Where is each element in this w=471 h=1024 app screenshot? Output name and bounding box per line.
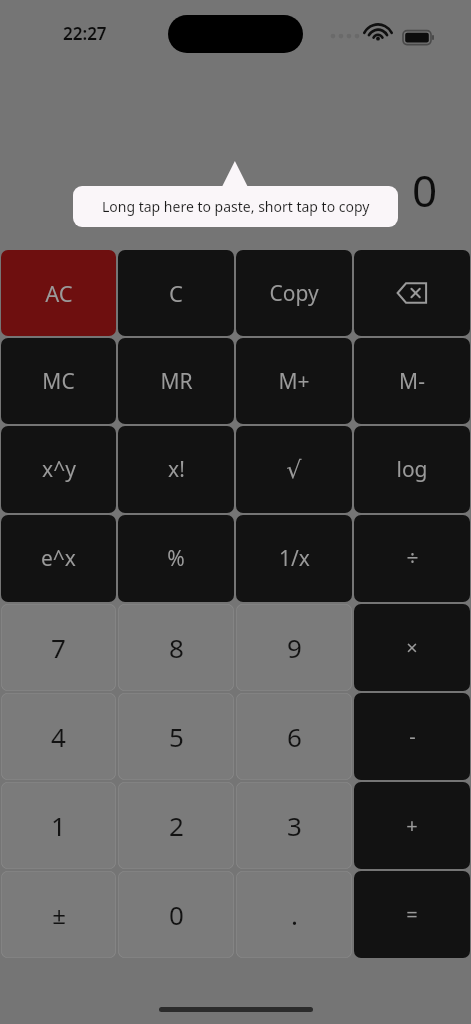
staticText: 2 — [169, 808, 184, 843]
staticText: 22:27 — [63, 22, 107, 45]
button[interactable]: e^x — [1, 515, 116, 602]
button[interactable]: Long tap here to paste, short tap to cop… — [73, 186, 398, 227]
staticText: = — [406, 901, 418, 928]
button[interactable]: 8 — [118, 604, 234, 691]
button[interactable]: 1/x — [236, 515, 352, 602]
staticText: 7 — [51, 630, 66, 665]
button[interactable]: - — [354, 693, 470, 780]
button[interactable]: % — [118, 515, 234, 602]
button[interactable]: 5 — [118, 693, 234, 780]
button[interactable]: ± — [1, 871, 116, 958]
button[interactable]: + — [354, 782, 470, 869]
staticText: ± — [52, 898, 66, 931]
staticText: 4 — [51, 719, 66, 754]
staticText: 0 — [169, 897, 184, 932]
staticText: Long tap here to paste, short tap to cop… — [102, 197, 370, 216]
staticText: MR — [160, 367, 193, 396]
staticText: 3 — [287, 808, 302, 843]
staticText: 1/x — [279, 544, 310, 573]
staticText: 5 — [169, 719, 184, 754]
button[interactable]: 9 — [236, 604, 352, 691]
staticText: - — [409, 723, 416, 750]
button[interactable]: 1 — [1, 782, 116, 869]
button[interactable]: × — [354, 604, 470, 691]
staticText: 8 — [169, 630, 184, 665]
staticText: . — [291, 897, 298, 932]
staticText: Copy — [269, 279, 319, 308]
button[interactable]: log — [354, 426, 470, 513]
button[interactable]: √ — [236, 426, 352, 513]
staticText: 9 — [287, 630, 302, 665]
staticText: 6 — [287, 719, 302, 754]
staticText: % — [167, 544, 185, 573]
button[interactable]: AC — [1, 250, 116, 336]
staticText: M+ — [278, 367, 310, 396]
button[interactable]: C — [118, 250, 234, 336]
button[interactable]: = — [354, 871, 470, 958]
button[interactable]: M- — [354, 338, 470, 424]
button[interactable]: 2 — [118, 782, 234, 869]
button[interactable]: 6 — [236, 693, 352, 780]
button[interactable]: Backspace — [354, 250, 470, 336]
staticText: MC — [42, 367, 75, 396]
staticText: + — [406, 812, 418, 839]
button[interactable]: ÷ — [354, 515, 470, 602]
button[interactable]: 3 — [236, 782, 352, 869]
button[interactable]: MC — [1, 338, 116, 424]
staticText: e^x — [41, 544, 76, 573]
button[interactable]: x^y — [1, 426, 116, 513]
staticText: x! — [168, 455, 185, 484]
staticText: C — [169, 278, 183, 308]
staticText: x^y — [42, 455, 76, 484]
button[interactable]: x! — [118, 426, 234, 513]
staticText: 0 — [412, 160, 438, 220]
button[interactable]: MR — [118, 338, 234, 424]
staticText: √ — [286, 456, 302, 484]
staticText: AC — [45, 278, 73, 308]
button[interactable]: M+ — [236, 338, 352, 424]
staticText: log — [396, 455, 428, 484]
staticText: 1 — [51, 808, 66, 843]
button[interactable]: Copy — [236, 250, 352, 336]
button[interactable]: 7 — [1, 604, 116, 691]
staticText: M- — [399, 367, 425, 396]
staticText: × — [406, 634, 418, 661]
button[interactable]: . — [236, 871, 352, 958]
button[interactable]: 0 — [118, 871, 234, 958]
button[interactable]: 4 — [1, 693, 116, 780]
staticText: ÷ — [406, 544, 419, 573]
